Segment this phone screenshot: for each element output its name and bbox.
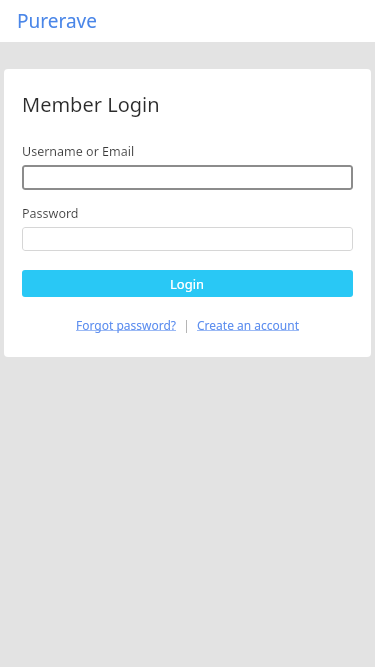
staticText: Member Login — [22, 91, 160, 118]
staticText: | — [177, 317, 197, 333]
button[interactable]: Purerave — [17, 8, 97, 34]
button[interactable]: Forgot password? — [76, 317, 177, 333]
button[interactable]: Create an account — [197, 317, 299, 333]
button[interactable]: Login — [22, 270, 353, 297]
button[interactable] — [22, 165, 353, 190]
staticText: Login — [170, 275, 205, 293]
button[interactable] — [22, 227, 353, 251]
staticText: Password — [22, 205, 79, 222]
staticText: Username or Email — [22, 143, 135, 160]
